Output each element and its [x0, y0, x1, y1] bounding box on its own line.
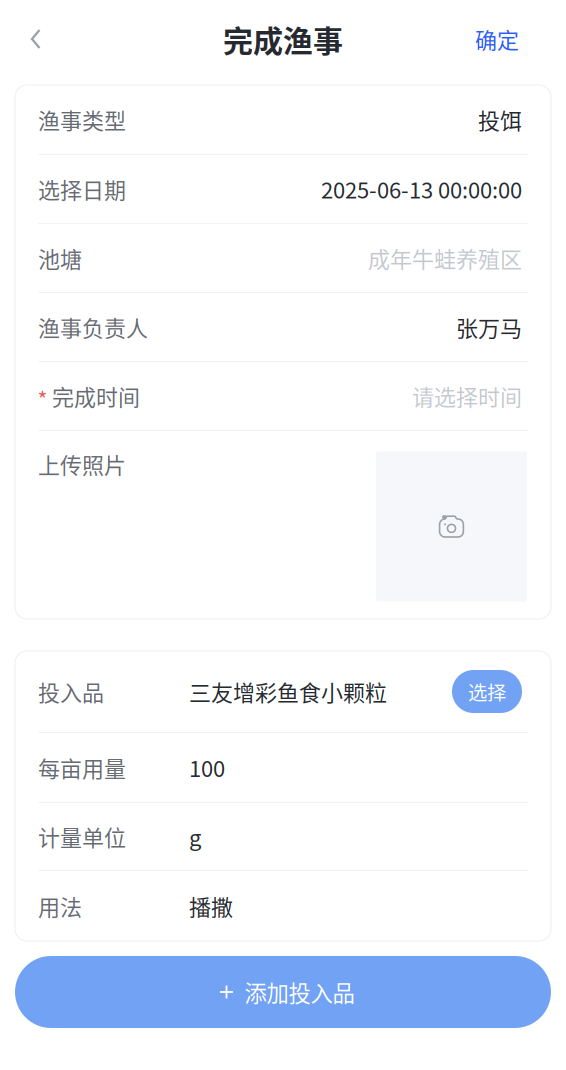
button[interactable]: 渔事负责人 [15, 293, 551, 361]
staticText: 渔事类型 [38, 104, 126, 135]
staticText: 渔事负责人 [38, 311, 148, 343]
staticText: 2025-06-13 00:00:00 [321, 173, 522, 205]
button[interactable]: 添加投入品 [15, 956, 551, 1028]
staticText: 投入品 [38, 676, 104, 707]
staticText: 选择日期 [38, 173, 126, 205]
staticText: 完成时间 [52, 380, 140, 412]
staticText: 100 [189, 752, 225, 783]
button[interactable]: 用法 [15, 871, 551, 941]
button[interactable]: 池塘 [15, 224, 551, 292]
staticText: 成年牛蛙养殖区 [368, 242, 522, 274]
staticText: 完成渔事 [223, 17, 343, 61]
staticText: 三友增彩鱼食小颗粒 [189, 676, 387, 707]
button[interactable]: 选择日期 [15, 155, 551, 223]
staticText: 添加投入品 [244, 976, 354, 1008]
staticText: 张万马 [456, 311, 522, 343]
staticText: g [189, 821, 201, 852]
staticText: * [37, 383, 47, 414]
button[interactable]: 选择 [452, 670, 522, 713]
staticText: 播撒 [189, 890, 233, 922]
button[interactable]: 上传照片 [376, 451, 527, 601]
staticText: 每亩用量 [38, 752, 126, 783]
staticText: 请选择时间 [412, 380, 522, 412]
button[interactable]: 每亩用量 [15, 733, 551, 802]
staticText: 用法 [38, 890, 82, 922]
staticText: 选择 [468, 677, 506, 705]
staticText: 上传照片 [38, 448, 126, 480]
button[interactable]: * [15, 362, 551, 430]
button[interactable]: 确定 [455, 13, 539, 65]
button[interactable]: 计量单位 [15, 803, 551, 870]
button[interactable]: 返回 [12, 17, 60, 61]
staticText: 投饵 [478, 104, 522, 135]
staticText: 计量单位 [38, 821, 126, 852]
button[interactable]: 渔事类型 [15, 85, 551, 154]
staticText: 确定 [475, 23, 519, 55]
staticText: 池塘 [38, 242, 82, 274]
